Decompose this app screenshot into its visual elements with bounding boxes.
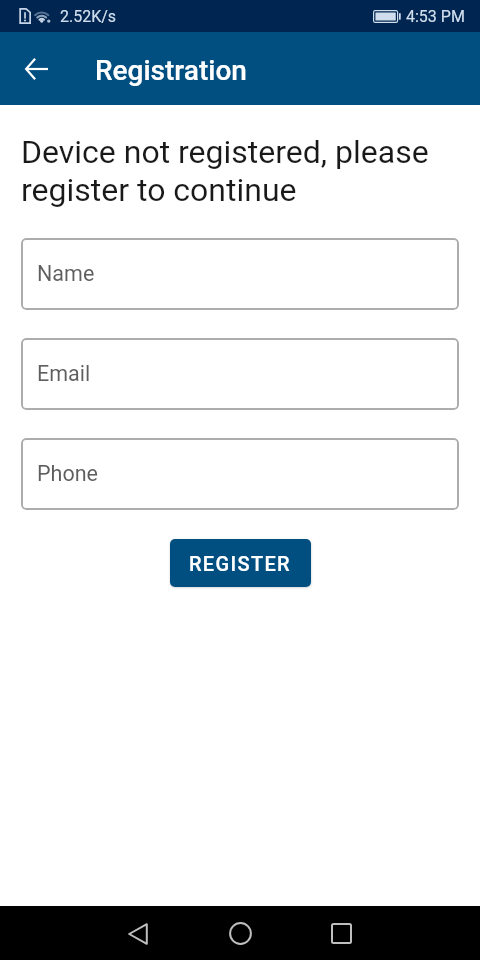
staticText: 2.52K/s — [60, 7, 117, 26]
staticText: 4:53 PM — [406, 7, 465, 26]
button[interactable]: Back — [12, 45, 60, 93]
staticText: Device not registered, please register t… — [21, 133, 452, 209]
button[interactable]: REGISTER — [170, 539, 311, 587]
button[interactable]: Phone — [21, 438, 459, 510]
staticText: REGISTER — [189, 552, 291, 575]
staticText: Name — [37, 261, 95, 286]
button[interactable]: Name — [21, 238, 459, 310]
button[interactable]: Home — [217, 910, 264, 957]
staticText: Phone — [37, 461, 98, 486]
button[interactable]: Back — [114, 910, 161, 957]
button[interactable]: Recents — [318, 910, 365, 957]
button[interactable]: Email — [21, 338, 459, 410]
staticText: Email — [37, 361, 91, 386]
staticText: Registration — [95, 54, 247, 87]
